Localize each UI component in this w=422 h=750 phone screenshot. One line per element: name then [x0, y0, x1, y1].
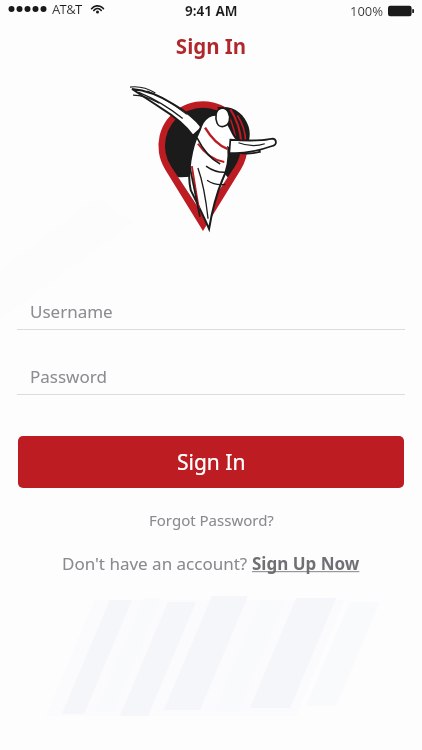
staticText: Sign In	[0, 32, 422, 60]
staticText: Sign Up Now	[252, 552, 360, 575]
staticText: Password	[30, 365, 107, 388]
button[interactable]: Username	[17, 294, 405, 331]
button[interactable]: Sign In	[18, 436, 404, 488]
staticText: Username	[30, 300, 113, 323]
staticText: AT&T	[52, 0, 83, 18]
staticText: 100%	[350, 2, 384, 20]
button[interactable]: Password	[17, 359, 405, 396]
staticText: Don't have an account?	[62, 552, 252, 575]
staticText: Sign In	[177, 448, 246, 477]
staticText: 9:41 AM	[185, 2, 238, 20]
staticText: Forgot Password?	[149, 510, 274, 530]
other: App logo	[128, 85, 280, 230]
button[interactable]: Sign Up Now	[252, 552, 360, 575]
button[interactable]: Forgot Password?	[141, 506, 282, 534]
